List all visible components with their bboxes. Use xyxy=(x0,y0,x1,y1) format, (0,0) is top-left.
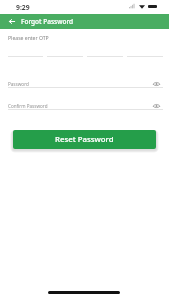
staticText: Reset Password xyxy=(55,134,114,145)
staticText: Please enter OTP xyxy=(8,35,49,42)
button[interactable]: Toggle password visibility xyxy=(152,80,160,88)
staticText: Forgot Password xyxy=(21,17,74,26)
button[interactable]: Toggle password visibility xyxy=(152,102,160,110)
staticText: Password xyxy=(8,81,29,87)
staticText: 9:29 xyxy=(16,3,30,12)
staticText: Confirm Password xyxy=(8,103,48,109)
button[interactable]: Back xyxy=(0,14,19,29)
button[interactable]: Reset Password xyxy=(13,130,156,149)
